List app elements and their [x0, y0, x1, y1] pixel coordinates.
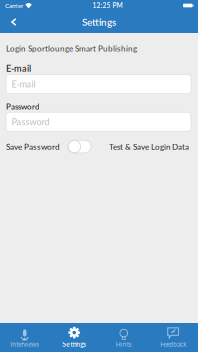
staticText: Save Password	[6, 142, 60, 151]
staticText: 12:25 PM	[92, 1, 122, 9]
staticText: Login Sportlounge Smart Publishing	[6, 43, 137, 53]
staticText: Password	[6, 102, 39, 111]
button[interactable]: Interviews	[0, 322, 49, 352]
staticText: Password	[11, 116, 49, 127]
staticText: Test & Save Login Data	[109, 142, 189, 151]
staticText: E-mail	[6, 63, 31, 74]
staticText: Settings	[82, 16, 116, 28]
staticText: Interviews	[10, 340, 39, 348]
button[interactable]: Settings	[49, 322, 99, 352]
button[interactable]: Hints	[99, 322, 148, 352]
button[interactable]: Save Password	[60, 137, 96, 156]
staticText: Carrier	[5, 2, 23, 9]
button[interactable]: Back	[0, 12, 26, 32]
staticText: Settings	[62, 340, 86, 348]
staticText: Hints	[116, 340, 132, 348]
button[interactable]: Feedback	[148, 322, 198, 352]
staticText: Feedback	[160, 340, 186, 348]
staticText: E-mail	[11, 79, 35, 90]
